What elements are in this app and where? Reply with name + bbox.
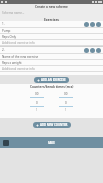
button[interactable]: Pump [0,28,103,34]
button[interactable]: ADD AN EXERCISE [34,77,69,83]
button[interactable]: 00 [30,92,44,98]
button[interactable]: Delete [96,22,101,27]
button[interactable]: Additional exercise info [0,66,103,72]
staticText: ADD NEW COUNTER [40,123,68,127]
staticText: 00 [35,92,39,96]
button[interactable]: ADD NEW COUNTER [33,122,71,128]
button[interactable]: Move down [90,22,95,27]
button[interactable]: 0 [30,101,44,107]
staticText: 1 [36,108,38,112]
button[interactable]: Name of the new exercise [0,54,103,60]
staticText: 00 [64,92,68,96]
staticText: Additional exercise info [2,67,35,71]
button[interactable]: Move up [84,48,89,53]
staticText: 1. [2,22,5,26]
button[interactable]: Move down [90,48,95,53]
button[interactable]: Additional exercise info [0,40,103,46]
button[interactable]: Schema name... [0,10,103,16]
staticText: Reps Only [2,35,17,39]
staticText: Name of the new exercise [2,55,39,59]
staticText: Pump [2,29,11,33]
button[interactable]: Reps Only [0,34,103,40]
other: Menu [3,140,9,146]
button[interactable]: Menu [0,137,103,148]
staticText: Reps x weight [2,61,22,65]
staticText: 0 [65,101,67,105]
staticText: Additional exercise info [2,41,35,45]
staticText: 0 [36,101,38,105]
staticText: 1 [65,108,67,112]
button[interactable]: 0 [59,101,73,107]
staticText: ADD AN EXERCISE [41,78,66,82]
staticText: SAVE [48,141,55,145]
staticText: Schema name... [2,11,25,15]
button[interactable]: 00 [59,92,73,98]
staticText: Counters/break times (m:s) [30,85,74,89]
staticText: Exercises [44,17,60,21]
staticText: Create a new scheme [35,5,68,9]
staticText: 2. [2,48,5,52]
button[interactable]: Reps x weight [0,60,103,66]
button[interactable]: Delete [96,48,101,53]
button[interactable]: Move up [84,22,89,27]
